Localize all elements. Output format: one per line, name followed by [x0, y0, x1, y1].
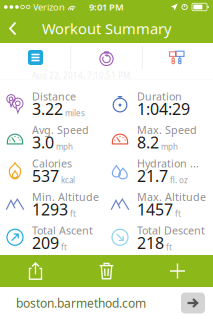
button[interactable]: Back [0, 14, 23, 43]
staticText: 537 [32, 165, 59, 186]
staticText: Aug 22, 2014, 7:10:51 PM [32, 70, 130, 81]
staticText: Hydration ... [137, 156, 199, 170]
button[interactable]: Delete [71, 255, 142, 287]
staticText: Distance [32, 89, 76, 103]
staticText: 21.7 [137, 165, 168, 186]
staticText: 1293 [32, 199, 68, 220]
staticText: 1457 [137, 199, 173, 220]
staticText: 3.22 [32, 98, 63, 119]
staticText: 3.0 [32, 132, 54, 153]
button[interactable]: Add [142, 255, 213, 287]
staticText: Avg. Speed [32, 123, 89, 137]
button[interactable]: Share [0, 255, 71, 287]
staticText: kcal [61, 175, 75, 185]
staticText: Total Descent [137, 223, 205, 237]
staticText: ft [166, 242, 172, 252]
button[interactable]: Laps [71, 43, 142, 72]
staticText: Max. Altitude [137, 190, 206, 204]
staticText: 218 [137, 232, 164, 253]
staticText: mph [161, 141, 178, 152]
staticText: 1:04:29 [137, 98, 190, 119]
staticText: fl. oz [170, 175, 188, 185]
staticText: Workout Summary [42, 19, 171, 38]
staticText: ft [70, 208, 76, 219]
button[interactable]: Next [181, 292, 205, 313]
staticText: Total Ascent [32, 223, 93, 237]
staticText: 9:01 PM [89, 1, 124, 13]
staticText: miles [65, 108, 85, 118]
staticText: Max. Speed [137, 123, 197, 137]
staticText: Duration [137, 89, 182, 103]
staticText: ft [61, 242, 67, 252]
staticText: Verizon [33, 1, 65, 13]
button[interactable]: Compare [142, 43, 213, 72]
staticText: ft [175, 208, 181, 219]
staticText: Calories [32, 156, 72, 170]
staticText: boston.barmethod.com [16, 295, 146, 311]
button[interactable]: Summary [0, 43, 71, 72]
staticText: Min. Altitude [32, 190, 99, 204]
staticText: 209 [32, 232, 59, 253]
staticText: 8.2 [137, 132, 159, 153]
staticText: mph [56, 141, 73, 152]
